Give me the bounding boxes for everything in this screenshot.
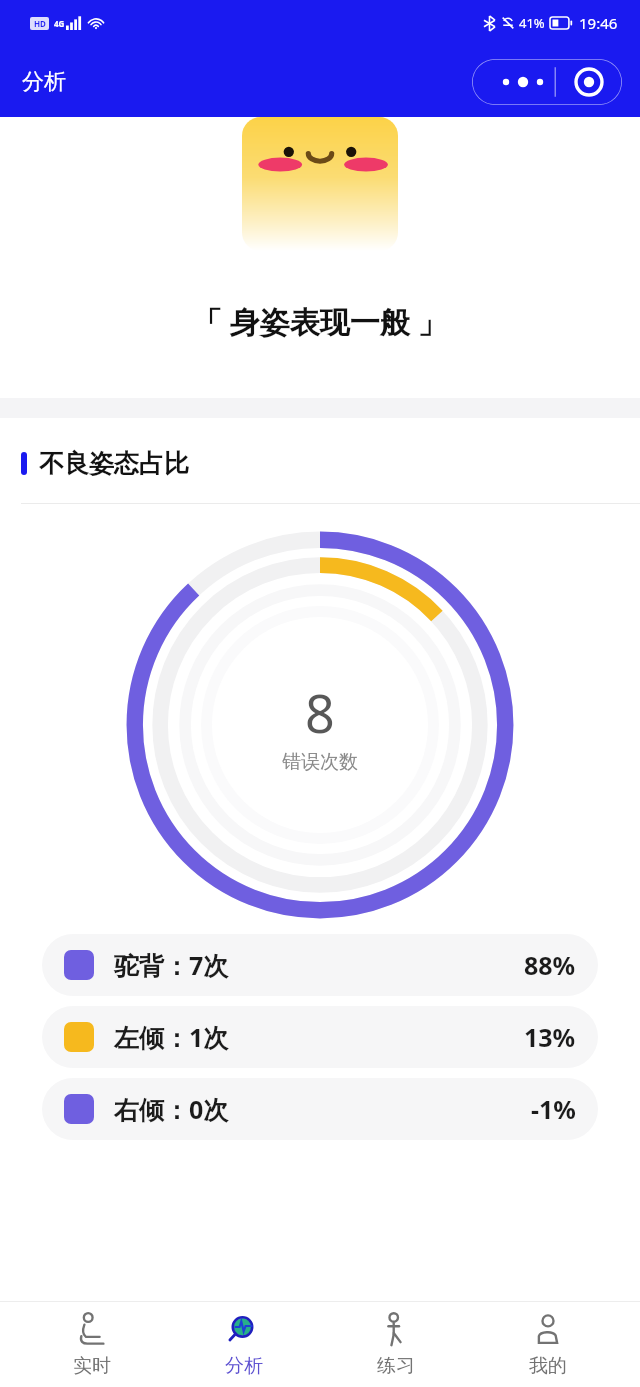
staticText: HD bbox=[34, 18, 46, 29]
staticText: 错误次数 bbox=[282, 750, 358, 774]
button[interactable]: 练习 bbox=[336, 1311, 456, 1378]
button[interactable]: 右倾：0次 bbox=[42, 1078, 598, 1140]
button[interactable]: 驼背：7次 bbox=[42, 934, 598, 996]
staticText: 右倾：0次 bbox=[114, 1092, 229, 1126]
staticText: 分析 bbox=[225, 1354, 263, 1378]
staticText: 左倾：1次 bbox=[114, 1020, 229, 1054]
staticText: 41% bbox=[519, 14, 545, 32]
staticText: 19:46 bbox=[579, 13, 618, 33]
button[interactable]: 分析 bbox=[184, 1311, 304, 1378]
staticText: 我的 bbox=[529, 1354, 567, 1378]
staticText: 驼背：7次 bbox=[114, 948, 229, 982]
button[interactable]: 实时 bbox=[32, 1311, 152, 1378]
staticText: -1% bbox=[531, 1092, 576, 1126]
staticText: 4G bbox=[54, 18, 65, 29]
button[interactable]: 我的 bbox=[488, 1311, 608, 1378]
staticText: 实时 bbox=[73, 1354, 111, 1378]
staticText: 分析 bbox=[22, 68, 66, 96]
staticText: 「 身姿表现一般 」 bbox=[192, 301, 448, 342]
staticText: 练习 bbox=[377, 1354, 415, 1378]
staticText: 13% bbox=[524, 1020, 576, 1054]
staticText: 88% bbox=[524, 948, 576, 982]
button[interactable]: 左倾：1次 bbox=[42, 1006, 598, 1068]
button[interactable] bbox=[472, 59, 622, 105]
staticText: 不良姿态占比 bbox=[39, 448, 189, 479]
staticText: 8 bbox=[305, 677, 335, 748]
